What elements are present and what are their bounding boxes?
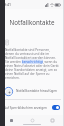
button[interactable]: Notfallkontakte hinzufügen bbox=[0, 85, 64, 97]
button[interactable]: Recent apps bbox=[49, 117, 56, 124]
staticText: Notfallkontakte sind Personen, denen du … bbox=[5, 48, 59, 80]
staticText: Auf Sperrbildschirm anzeigen bbox=[4, 106, 52, 110]
staticText: Notfallkontakte hinzufügen bbox=[16, 89, 58, 93]
button[interactable]: Auf Sperrbildschirm anzeigen bbox=[0, 103, 64, 112]
staticText: Notfallkontakte bbox=[5, 18, 59, 26]
button[interactable]: Back bbox=[8, 117, 15, 124]
button[interactable]: Home bbox=[29, 117, 36, 124]
staticText: 9:41 bbox=[4, 2, 11, 7]
other: Auf Sperrbildschirm anzeigen bbox=[52, 105, 60, 110]
